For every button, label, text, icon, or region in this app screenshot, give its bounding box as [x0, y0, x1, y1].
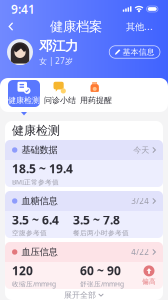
staticText: 用药提醒 [80, 95, 112, 105]
staticText: 血糖信息 [21, 195, 57, 207]
staticText: 偏高 [142, 277, 156, 286]
staticText: 舒张压/mmHg [80, 279, 124, 288]
button[interactable]: 基础数据 [5, 140, 163, 187]
button[interactable]: 血压信息 [5, 242, 163, 289]
button[interactable]: 返回 [8, 18, 26, 34]
staticText: 其他成员 [126, 20, 160, 33]
staticText: 健康检测 [8, 95, 40, 105]
staticText: 4/22 [131, 247, 149, 257]
staticText: 健康检测 [12, 123, 60, 138]
staticText: 9:41 [11, 1, 35, 17]
button[interactable]: 血糖信息 [5, 191, 163, 238]
staticText: 邓江力 [39, 38, 78, 54]
button[interactable]: 问诊小结 [44, 80, 76, 107]
button[interactable]: 基本信息 [109, 46, 160, 58]
staticText: 今天 [133, 145, 149, 155]
button[interactable]: 展开全部 [5, 289, 163, 300]
staticText: 展开全部 [64, 290, 96, 300]
button[interactable]: 其他成员 [126, 20, 160, 33]
staticText: 3.5 ~ 7.8 [73, 212, 120, 228]
staticText: 空腹参考值 [12, 229, 47, 237]
staticText: 基本信息 [122, 47, 154, 57]
staticText: 基础数据 [21, 144, 57, 156]
staticText: 18.5 ~ 19.4 [12, 161, 73, 176]
staticText: 问诊小结 [44, 95, 76, 105]
staticText: 健康档案 [50, 18, 102, 35]
staticText: 女 | 27岁 [39, 56, 73, 66]
staticText: 血压信息 [21, 246, 57, 258]
staticText: 120 [12, 263, 33, 278]
staticText: 3.5 ~ 6.4 [12, 212, 59, 228]
button[interactable]: 用药提醒 [80, 80, 112, 107]
button[interactable]: 健康检测 [8, 80, 40, 107]
staticText: 60 ~ 90 [80, 263, 121, 278]
staticText: BMI正常参考值 [12, 177, 59, 186]
staticText: 3/24 [131, 196, 149, 206]
staticText: 餐后两小时参考值 [73, 229, 129, 237]
staticText: 收缩压/mmHg [12, 279, 56, 288]
